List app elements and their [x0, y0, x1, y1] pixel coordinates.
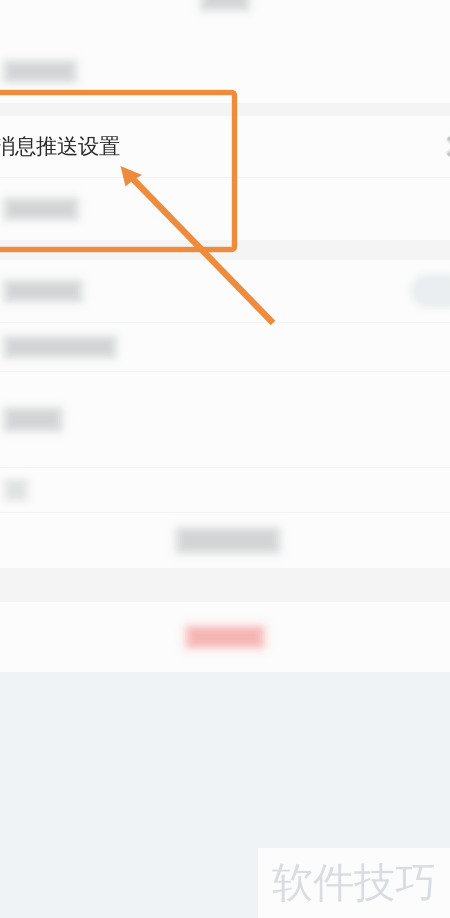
staticText: 消息推送设置	[0, 133, 120, 160]
button[interactable]	[0, 178, 450, 240]
button[interactable]	[0, 323, 450, 371]
button[interactable]	[0, 260, 450, 322]
staticText: 软件技巧	[272, 858, 436, 908]
button[interactable]	[0, 602, 450, 672]
button[interactable]	[0, 468, 450, 512]
button[interactable]	[0, 372, 450, 467]
button[interactable]: 消息推送设置	[0, 116, 450, 177]
button[interactable]	[0, 513, 450, 568]
button[interactable]	[0, 40, 450, 103]
